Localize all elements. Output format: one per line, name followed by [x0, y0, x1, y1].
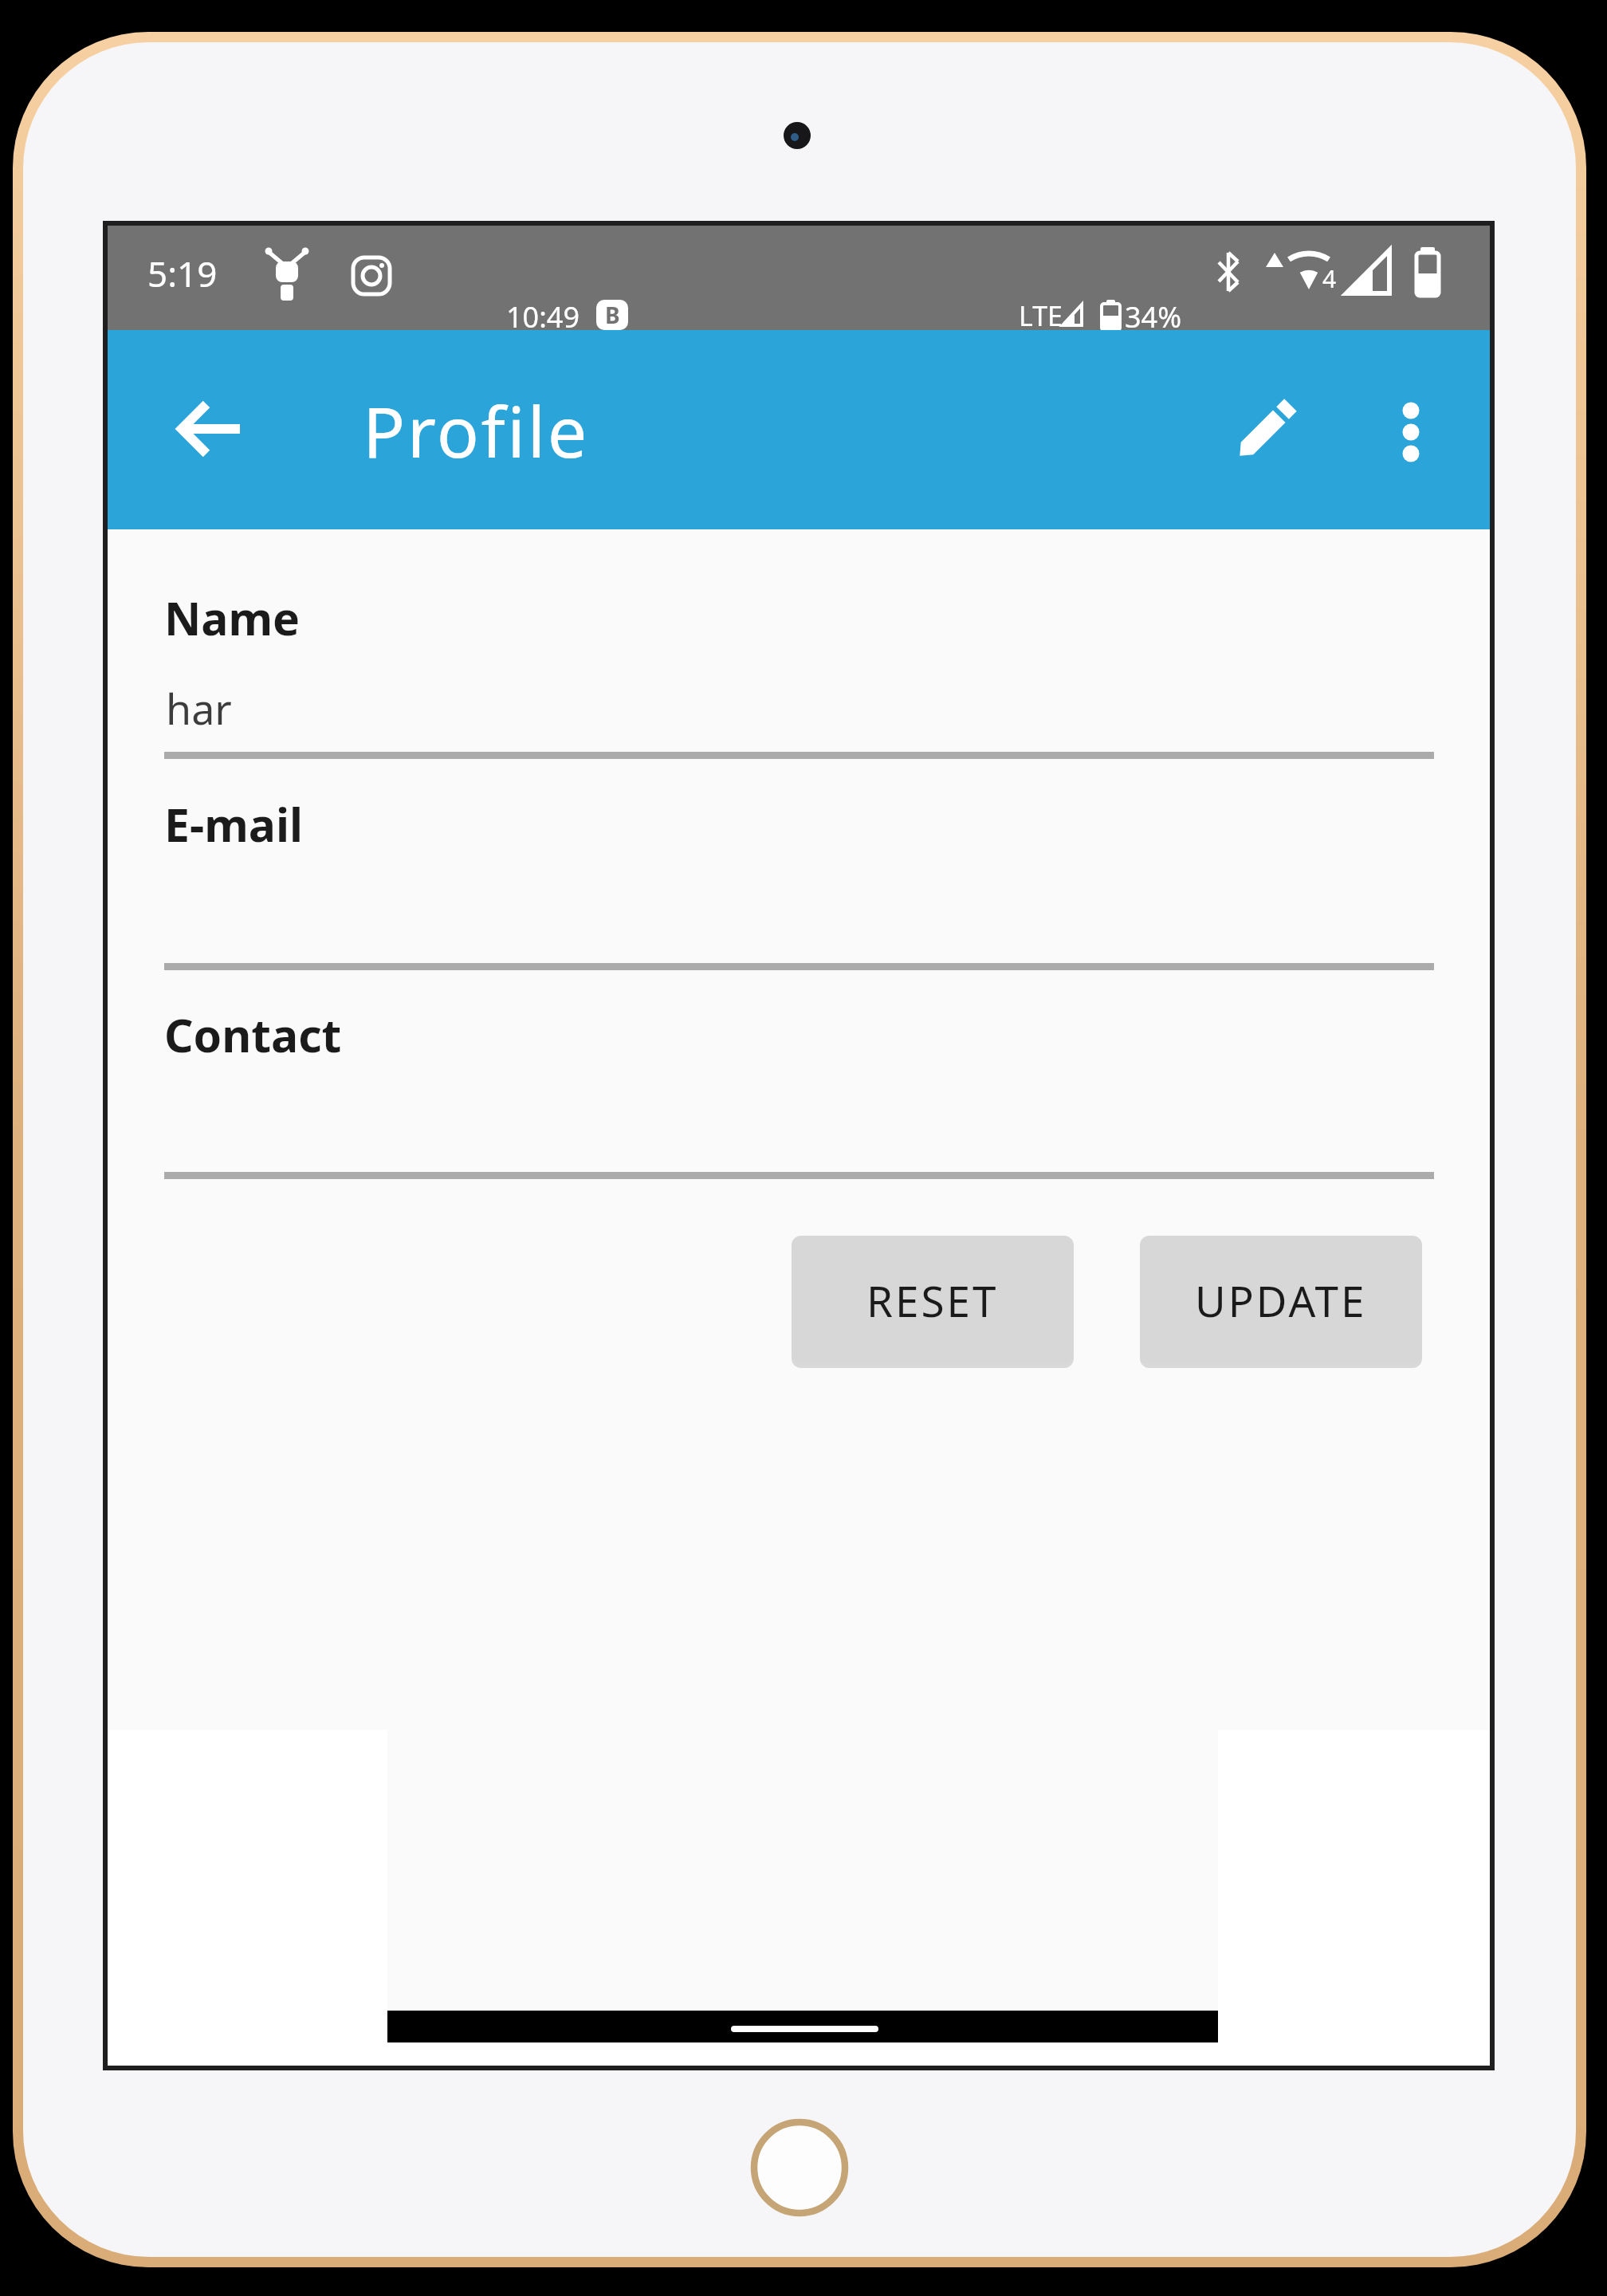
button[interactable]	[170, 389, 249, 469]
staticText: Contact	[164, 1004, 342, 1066]
staticText: 4	[1322, 262, 1337, 295]
button[interactable]	[164, 863, 1434, 970]
button[interactable]	[164, 662, 1434, 759]
button[interactable]	[1224, 392, 1303, 472]
staticText: LTE	[1019, 297, 1063, 329]
staticText: B	[605, 300, 620, 330]
staticText: 5:19	[147, 250, 218, 297]
staticText: E-mail	[164, 793, 303, 855]
button[interactable]: RESET	[792, 1236, 1074, 1364]
button[interactable]	[1371, 389, 1451, 469]
staticText: 10:49	[506, 297, 580, 329]
staticText: Profile	[363, 383, 589, 478]
staticText: RESET	[866, 1272, 999, 1329]
staticText: Name	[164, 587, 301, 649]
staticText: UPDATE	[1195, 1272, 1367, 1329]
button[interactable]: UPDATE	[1140, 1236, 1422, 1364]
staticText: 34%	[1125, 297, 1182, 329]
button[interactable]	[164, 1071, 1434, 1179]
staticText: har	[166, 680, 232, 737]
